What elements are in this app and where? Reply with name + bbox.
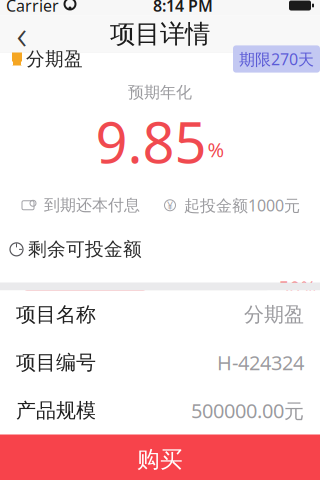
staticText: 剩余可投金额	[28, 238, 142, 261]
staticText: 产品规模	[16, 398, 96, 423]
staticText: 50%	[278, 275, 316, 300]
staticText: ¥	[167, 198, 173, 212]
staticText: 期限270天	[239, 48, 314, 70]
staticText: 项目名称	[16, 302, 96, 327]
button[interactable]: 购买	[0, 434, 320, 480]
staticText: 预期年化	[128, 83, 192, 102]
staticText: 分期盈	[244, 302, 304, 327]
staticText: 到期还本付息	[44, 195, 140, 215]
staticText: 起投金额1000元	[184, 195, 300, 216]
staticText: Carrier	[6, 0, 59, 16]
button[interactable]: Back	[0, 15, 44, 52]
staticText: 购买	[137, 446, 183, 473]
staticText: %	[207, 136, 224, 163]
staticText: 分期盈	[26, 47, 83, 70]
staticText: 项目编号	[16, 350, 96, 375]
staticText: 500000.00元	[191, 397, 304, 424]
staticText: ‹	[16, 7, 27, 60]
staticText: H-424324	[217, 349, 304, 376]
staticText: 9.85	[95, 104, 206, 179]
staticText: 项目详情	[110, 18, 210, 49]
staticText: 8:14 PM	[153, 0, 213, 16]
